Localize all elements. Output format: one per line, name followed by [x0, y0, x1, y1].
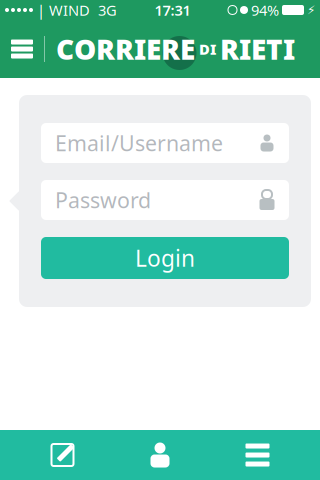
- button[interactable]: Login: [41, 237, 289, 279]
- button[interactable]: Compose: [27, 430, 97, 480]
- button[interactable]: Menu: [0, 20, 44, 78]
- button[interactable]: Menu: [222, 430, 292, 480]
- button[interactable]: Password: [41, 180, 289, 220]
- staticText: | WIND 3G: [33, 0, 117, 20]
- staticText: CORRIERE: [56, 30, 195, 68]
- staticText: RIETI: [220, 30, 295, 68]
- button[interactable]: Email/Username: [41, 123, 289, 163]
- staticText: 17:31: [154, 0, 190, 20]
- staticText: DI: [199, 39, 216, 59]
- staticText: Email/Username: [55, 129, 223, 157]
- staticText: Password: [55, 186, 151, 214]
- button[interactable]: Profile: [125, 430, 195, 480]
- staticText: 94%: [251, 0, 279, 20]
- staticText: Login: [135, 243, 195, 273]
- staticText: ⚡︎: [307, 3, 315, 17]
